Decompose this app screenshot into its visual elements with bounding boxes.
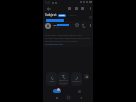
button[interactable]: Reply — [81, 22, 87, 28]
button[interactable]: Archive — [66, 5, 72, 11]
button[interactable]: Forward — [71, 72, 82, 86]
button[interactable]: Reply all — [58, 72, 69, 86]
staticText: Forward — [72, 80, 81, 83]
button[interactable]: Delete — [73, 5, 79, 11]
button[interactable]: Recents — [53, 94, 60, 101]
staticText: go.example.com — [45, 43, 63, 46]
staticText: Inbox — [59, 14, 65, 17]
button[interactable]: Compose — [53, 89, 61, 93]
button[interactable]: Home — [65, 94, 72, 101]
staticText: Reply — [49, 80, 55, 83]
staticText: & then — [60, 82, 67, 85]
staticText: Important information about your account… — [45, 34, 91, 43]
staticText: Subject — [45, 13, 57, 17]
button[interactable]: Reply — [46, 72, 57, 86]
button[interactable]: Mark unread — [79, 5, 85, 11]
button[interactable]: Star — [74, 22, 80, 28]
button[interactable]: Back — [45, 5, 52, 12]
button[interactable]: Back — [77, 94, 84, 101]
button[interactable]: More actions — [84, 74, 89, 79]
button[interactable]: More options — [87, 5, 93, 11]
button[interactable]: More options — [87, 22, 93, 28]
button[interactable]: Star — [87, 14, 93, 20]
staticText: · 3 more — [67, 14, 76, 17]
staticText: to me — [53, 26, 59, 29]
staticText: Reply all — [59, 79, 68, 82]
staticText: 9:41 — [45, 1, 51, 5]
staticText: me — [53, 23, 57, 26]
